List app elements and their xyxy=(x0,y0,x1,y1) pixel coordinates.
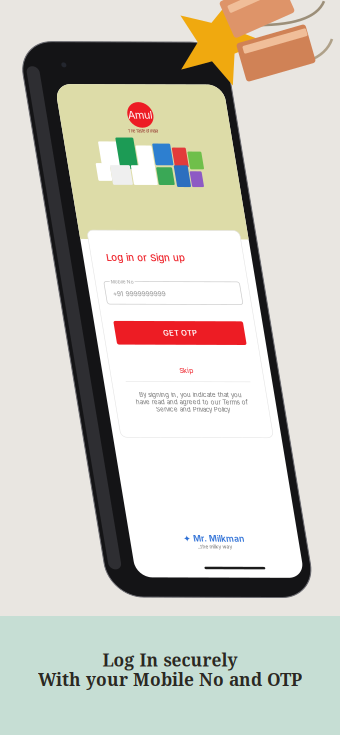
staticText: Mr. Milkman xyxy=(118,539,169,550)
staticText: ...the milky way xyxy=(121,550,156,556)
staticText: With your Mobile No and OTP xyxy=(38,667,302,691)
staticText: Log in or Sign up xyxy=(78,254,157,266)
staticText: By signing in, you indicate that you hav… xyxy=(83,395,195,417)
button[interactable]: Skip xyxy=(63,367,216,381)
staticText: Mobile No xyxy=(77,282,102,287)
button[interactable]: GET OTP xyxy=(74,324,204,348)
staticText: Amul xyxy=(123,109,148,121)
staticText: Log In securely xyxy=(102,648,237,671)
staticText: +91 9999999999 xyxy=(78,293,131,301)
staticText: The Taste of India xyxy=(121,129,151,134)
